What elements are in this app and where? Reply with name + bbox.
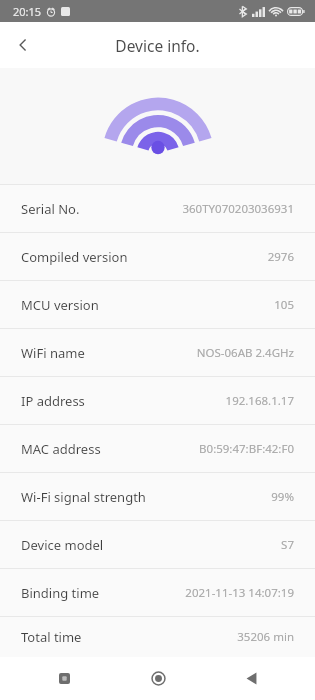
staticText: Wi-Fi signal strength xyxy=(21,488,146,506)
staticText: Binding time xyxy=(21,584,100,602)
button[interactable]: Total time xyxy=(0,617,315,657)
staticText: MCU version xyxy=(21,296,99,314)
button[interactable]: Home xyxy=(128,657,188,700)
staticText: WiFi name xyxy=(21,344,85,362)
staticText: S7 xyxy=(281,537,294,553)
staticText: 192.168.1.17 xyxy=(225,393,294,409)
staticText: 2976 xyxy=(267,249,294,265)
staticText: Compiled version xyxy=(21,248,128,266)
button[interactable]: Back xyxy=(221,657,281,700)
staticText: IP address xyxy=(21,392,85,410)
button[interactable]: Compiled version xyxy=(0,233,315,280)
button[interactable]: Wi-Fi signal strength xyxy=(0,473,315,520)
staticText: 35206 min xyxy=(237,629,294,645)
staticText: NOS-06AB 2.4GHz xyxy=(196,345,294,361)
staticText: 105 xyxy=(274,297,294,313)
staticText: 99% xyxy=(271,489,294,505)
staticText: Device model xyxy=(21,536,104,554)
staticText: Total time xyxy=(21,628,82,646)
button[interactable]: Binding time xyxy=(0,569,315,616)
staticText: B0:59:47:BF:42:F0 xyxy=(199,441,294,457)
button[interactable]: Recents xyxy=(34,657,94,700)
button[interactable]: IP address xyxy=(0,377,315,424)
staticText: Serial No. xyxy=(21,200,80,218)
staticText: 360TY070203036931 xyxy=(182,201,294,217)
button[interactable]: WiFi name xyxy=(0,329,315,376)
button[interactable]: Back xyxy=(0,22,46,68)
staticText: MAC address xyxy=(21,440,101,458)
button[interactable]: MAC address xyxy=(0,425,315,472)
button[interactable]: Device model xyxy=(0,521,315,568)
button[interactable]: Serial No. xyxy=(0,185,315,232)
staticText: 20:15 xyxy=(13,4,42,19)
staticText: 2021-11-13 14:07:19 xyxy=(185,585,294,601)
staticText: Device info. xyxy=(115,35,200,56)
button[interactable]: MCU version xyxy=(0,281,315,328)
